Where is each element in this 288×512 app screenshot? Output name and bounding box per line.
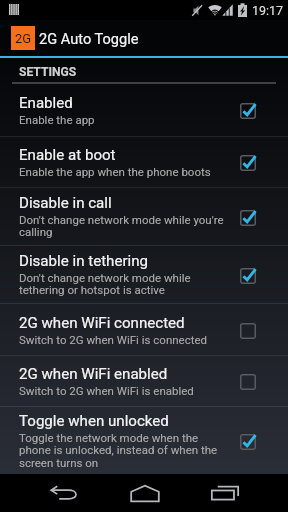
staticText: Switch to 2G when WiFi is connected bbox=[19, 333, 208, 346]
button[interactable]: Home bbox=[104, 474, 185, 512]
staticText: Don't change network mode while tetherin… bbox=[19, 271, 231, 297]
button[interactable]: Enabled bbox=[0, 84, 288, 136]
button[interactable]: Enable at boot bbox=[0, 137, 288, 187]
button[interactable]: Back bbox=[24, 474, 104, 512]
button[interactable]: 2G when WiFi enabled bbox=[0, 356, 288, 406]
staticText: 2G Auto Toggle bbox=[39, 30, 139, 47]
button[interactable]: Disable in call bbox=[0, 188, 288, 245]
staticText: 2G bbox=[15, 31, 32, 46]
staticText: SETTINGS bbox=[19, 65, 77, 79]
staticText: Toggle the network mode when the phone i… bbox=[19, 431, 231, 470]
staticText: Disable in tethering bbox=[19, 252, 149, 270]
staticText: 19:17 bbox=[252, 3, 284, 18]
staticText: Toggle when unlocked bbox=[19, 412, 169, 430]
staticText: Enabled bbox=[19, 94, 73, 112]
staticText: Enable the app bbox=[19, 113, 95, 126]
button[interactable]: Recent apps bbox=[185, 474, 265, 512]
staticText: Don't change network mode while you're c… bbox=[19, 213, 231, 239]
staticText: 2G when WiFi enabled bbox=[19, 365, 168, 383]
staticText: Disable in call bbox=[19, 194, 112, 212]
staticText: Enable at boot bbox=[19, 146, 116, 164]
button[interactable]: Toggle when unlocked bbox=[0, 407, 288, 474]
staticText: Switch to 2G when WiFi is enabled bbox=[19, 384, 194, 397]
staticText: 2G when WiFi connected bbox=[19, 314, 185, 332]
button[interactable]: Disable in tethering bbox=[0, 246, 288, 303]
button[interactable]: 2G when WiFi connected bbox=[0, 304, 288, 355]
staticText: Enable the app when the phone boots bbox=[19, 165, 211, 178]
